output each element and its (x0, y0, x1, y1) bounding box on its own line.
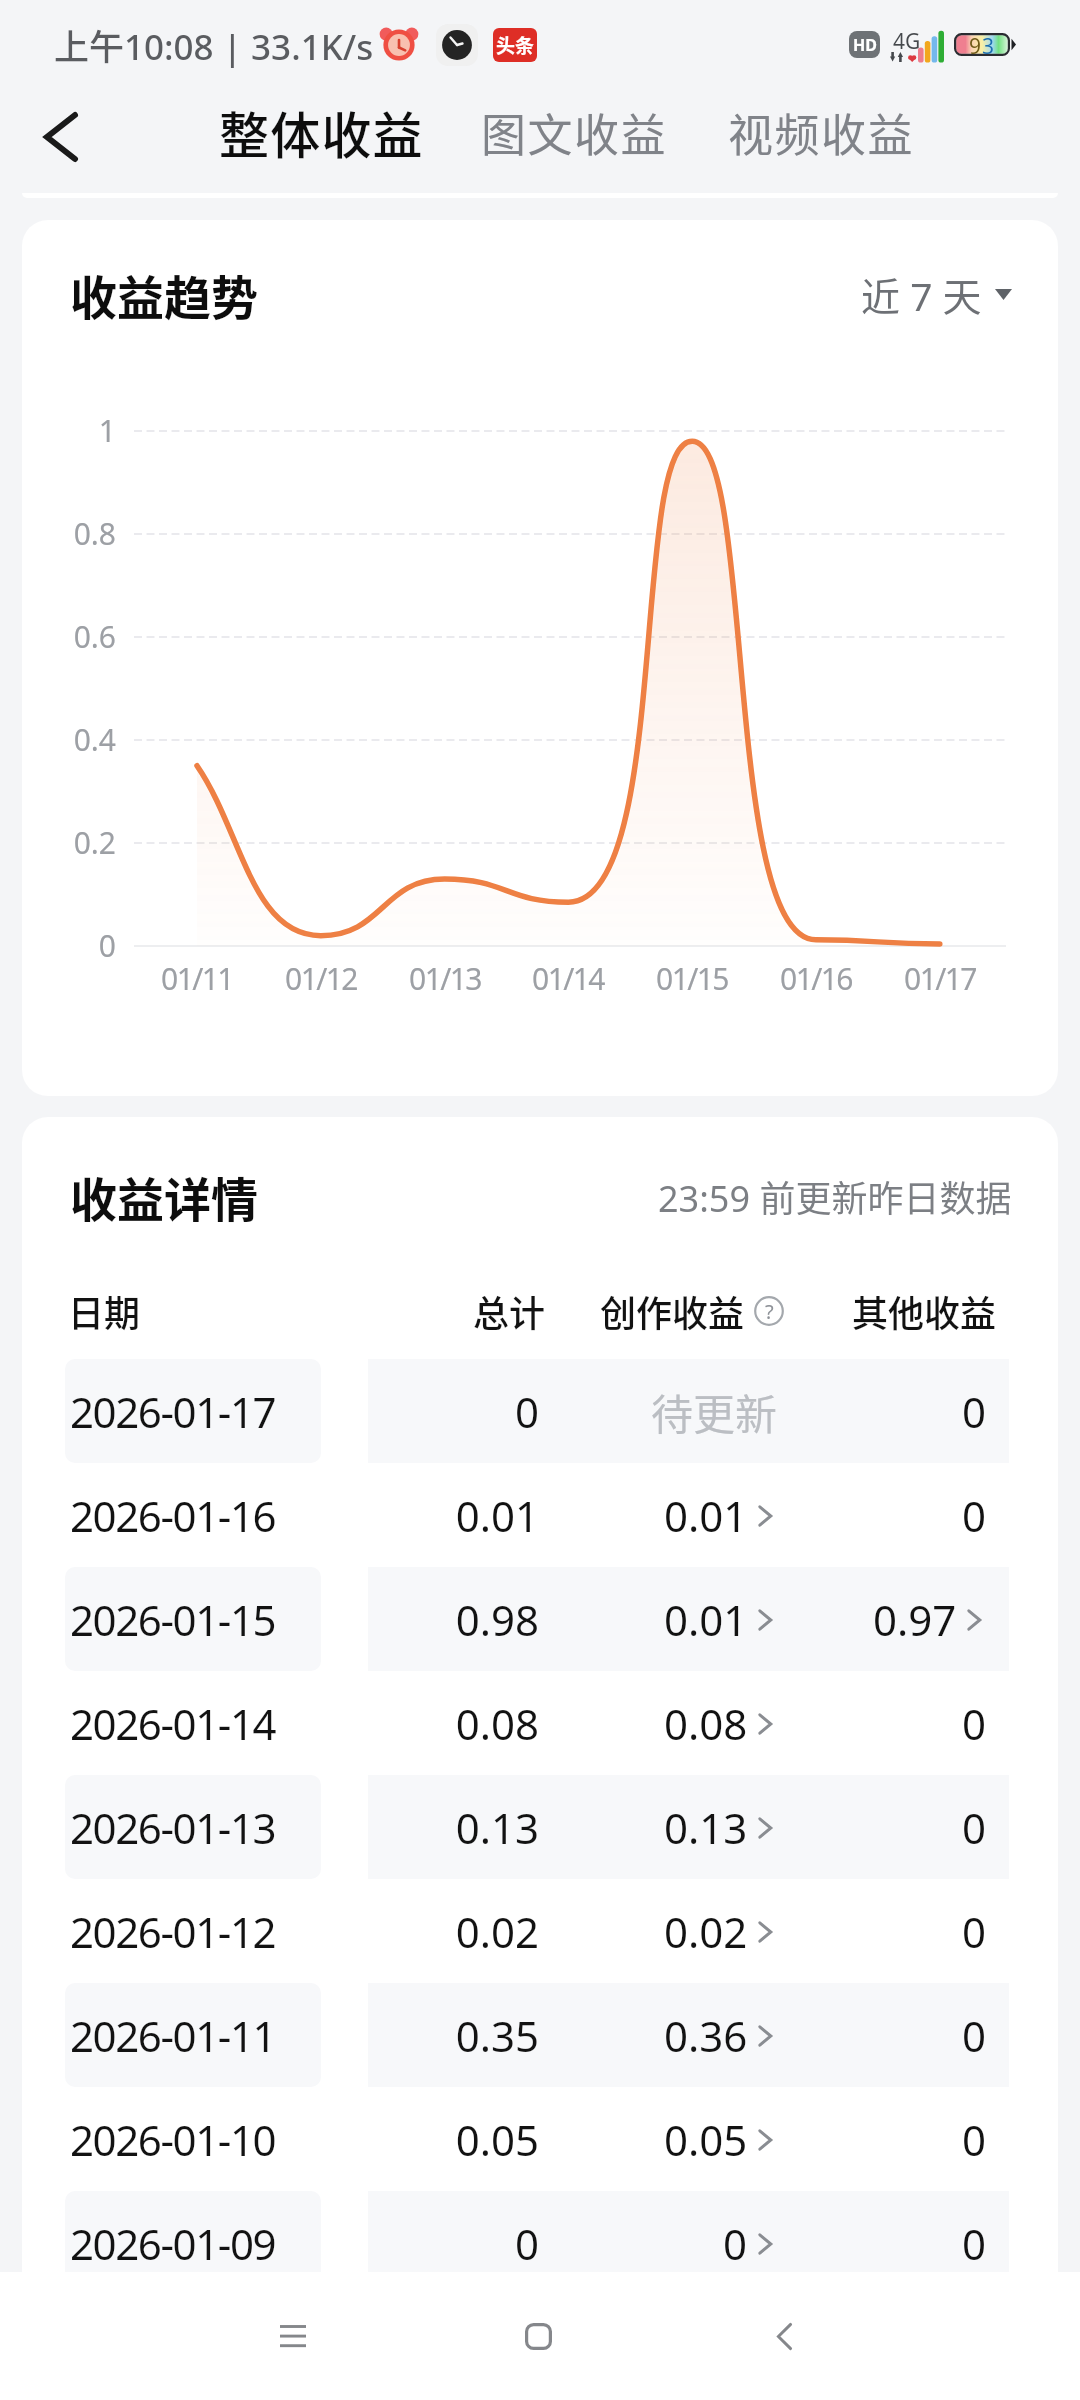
staticText: 2026-01-14 (70, 1695, 276, 1752)
staticText: 2026-01-13 (70, 1799, 276, 1856)
staticText: 0.97 (873, 1591, 957, 1648)
staticText: 0 (339, 2215, 539, 2272)
staticText: 2026-01-15 (70, 1591, 276, 1648)
staticText: 0.13 (339, 1799, 539, 1856)
staticText: 收益趋势 (70, 260, 258, 328)
staticText: 0 (98, 925, 116, 966)
staticText: 0.36 (664, 2007, 748, 2064)
staticText: 01/13 (375, 958, 515, 999)
staticText: 上午10:08 | 33.1K/s (54, 19, 374, 70)
staticText: 01/12 (251, 958, 391, 999)
staticText: 0 (962, 1903, 987, 1960)
staticText: 0.4 (73, 719, 116, 760)
staticText: 1 (98, 410, 116, 451)
staticText: 0 (723, 2215, 748, 2272)
staticText: 2026-01-16 (70, 1487, 276, 1544)
button[interactable]: 2026-01-13 (22, 1775, 1058, 1879)
staticText: 2026-01-09 (70, 2215, 276, 2272)
staticText: 2026-01-11 (70, 2007, 276, 2064)
staticText: HD (853, 34, 877, 56)
staticText: 0.01 (664, 1591, 748, 1648)
staticText: 4G (893, 27, 921, 56)
staticText: 0.6 (73, 616, 116, 657)
staticText: 0 (962, 1487, 987, 1544)
staticText: 0 (962, 2111, 987, 2168)
button[interactable]: 2026-01-15 (22, 1567, 1058, 1671)
staticText: 0.13 (664, 1799, 748, 1856)
staticText: 0.05 (664, 2111, 748, 2168)
staticText: 0 (962, 1383, 987, 1440)
button[interactable]: 整体收益 (219, 96, 424, 168)
staticText: 总计 (345, 1285, 545, 1337)
button[interactable]: What is creation revenue (754, 1296, 784, 1326)
staticText: 收益详情 (70, 1162, 258, 1230)
staticText: 0 (962, 2215, 987, 2272)
button[interactable]: 2026-01-14 (22, 1671, 1058, 1775)
staticText: 0.2 (73, 822, 116, 863)
staticText: 近 7 天 (861, 266, 982, 323)
staticText: 头条 (496, 31, 535, 59)
button[interactable]: 2026-01-16 (22, 1463, 1058, 1567)
staticText: ? (765, 1298, 774, 1325)
staticText: 0 (962, 1695, 987, 1752)
staticText: 01/17 (870, 958, 1010, 999)
staticText: 2026-01-17 (70, 1383, 276, 1440)
button[interactable]: Home (498, 2296, 578, 2376)
staticText: 图文收益 (481, 100, 668, 165)
button[interactable]: Recent apps (253, 2296, 333, 2376)
button[interactable]: 图文收益 (481, 100, 668, 165)
button[interactable]: 2026-01-10 (22, 2087, 1058, 2191)
button[interactable]: Back (25, 101, 97, 173)
staticText: 2026-01-12 (70, 1903, 276, 1960)
button[interactable]: 2026-01-09 (22, 2191, 1058, 2295)
button[interactable]: 2026-01-17 (22, 1359, 1058, 1463)
staticText: 0.02 (339, 1903, 539, 1960)
staticText: 0.08 (664, 1695, 748, 1752)
button[interactable]: 2026-01-12 (22, 1879, 1058, 1983)
staticText: 0.01 (664, 1487, 748, 1544)
button[interactable]: 2026-01-11 (22, 1983, 1058, 2087)
staticText: 0.98 (339, 1591, 539, 1648)
staticText: 其他收益 (816, 1285, 996, 1337)
staticText: 0 (962, 1799, 987, 1856)
staticText: 01/15 (622, 958, 762, 999)
staticText: 0.02 (664, 1903, 748, 1960)
staticText: 待更新 (651, 1381, 778, 1442)
staticText: 整体收益 (219, 96, 424, 168)
staticText: 0.35 (339, 2007, 539, 2064)
staticText: 0.05 (339, 2111, 539, 2168)
staticText: 视频收益 (728, 100, 915, 165)
staticText: 3 (982, 32, 995, 55)
staticText: 0 (339, 1383, 539, 1440)
staticText: 23:59 前更新昨日数据 (658, 1170, 1012, 1222)
staticText: 0.08 (339, 1695, 539, 1752)
staticText: 创作收益 (564, 1285, 744, 1337)
staticText: 01/14 (498, 958, 638, 999)
staticText: 01/11 (127, 958, 267, 999)
staticText: 0.8 (73, 513, 116, 554)
staticText: 0 (962, 2007, 987, 2064)
staticText: 9 (969, 32, 982, 55)
staticText: 0.01 (339, 1487, 539, 1544)
button[interactable]: 视频收益 (728, 100, 915, 165)
button[interactable]: Back (744, 2296, 824, 2376)
button[interactable]: 近 7 天 (861, 266, 1012, 323)
staticText: 01/16 (746, 958, 886, 999)
staticText: 日期 (68, 1285, 141, 1337)
staticText: 2026-01-10 (70, 2111, 276, 2168)
